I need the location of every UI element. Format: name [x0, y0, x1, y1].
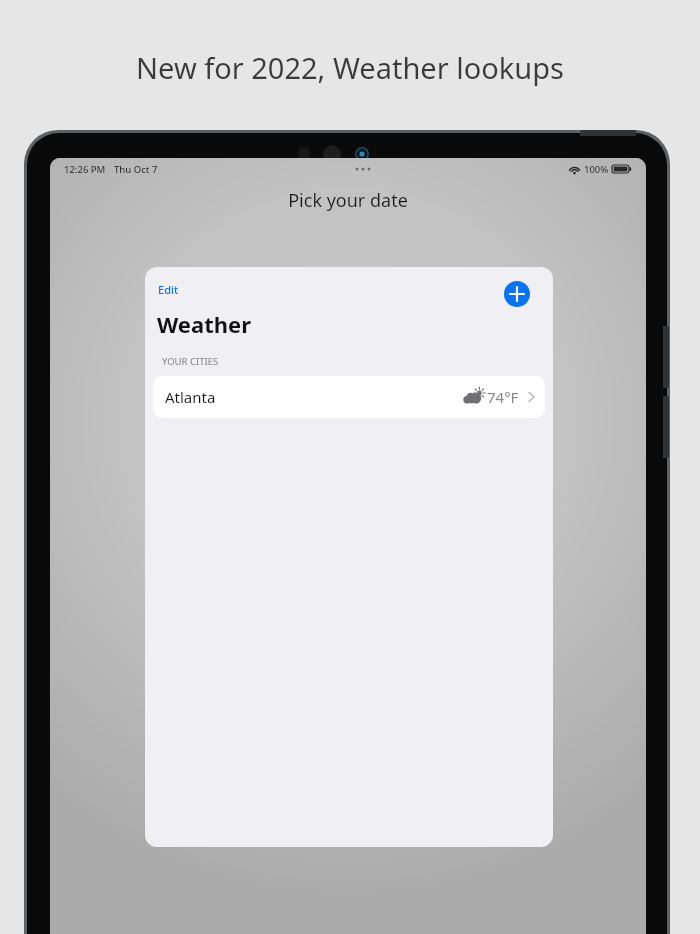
staticText: Thu Oct 7 — [114, 163, 158, 176]
staticText: 74°F — [487, 387, 519, 407]
staticText: Edit — [158, 282, 179, 297]
staticText: Weather — [157, 309, 251, 339]
button[interactable]: Add city — [504, 281, 530, 307]
staticText: 12:26 PM — [64, 163, 106, 176]
staticText: YOUR CITIES — [162, 355, 219, 368]
staticText: 100% — [584, 163, 609, 176]
button[interactable]: Atlanta — [153, 376, 545, 418]
staticText: Pick your date — [50, 188, 646, 213]
staticText: Atlanta — [165, 387, 216, 407]
button[interactable]: Edit — [155, 279, 182, 300]
staticText: New for 2022, Weather lookups — [0, 48, 700, 87]
